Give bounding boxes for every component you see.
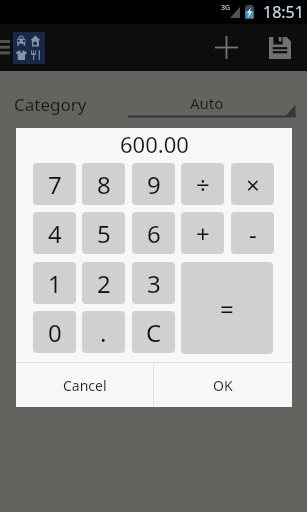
- staticText: 9: [147, 168, 161, 201]
- staticText: .: [100, 316, 107, 349]
- staticText: 7: [48, 168, 62, 201]
- button[interactable]: 1: [33, 262, 76, 304]
- button[interactable]: 4: [33, 212, 76, 254]
- staticText: 1: [48, 267, 62, 300]
- button[interactable]: Save: [258, 24, 302, 71]
- button[interactable]: +: [181, 212, 224, 254]
- button[interactable]: 8: [82, 163, 125, 205]
- staticText: 2: [97, 267, 111, 300]
- staticText: =: [220, 292, 234, 325]
- staticText: 8: [97, 168, 111, 201]
- staticText: +: [196, 217, 210, 250]
- button[interactable]: 2: [82, 262, 125, 304]
- button[interactable]: 6: [132, 212, 175, 254]
- staticText: -: [249, 217, 257, 250]
- staticText: ÷: [196, 168, 210, 201]
- staticText: Auto: [190, 93, 224, 113]
- button[interactable]: OK: [154, 363, 292, 407]
- staticText: 3: [147, 267, 161, 300]
- staticText: 4: [48, 217, 62, 250]
- staticText: ×: [246, 168, 260, 201]
- button[interactable]: ÷: [181, 163, 224, 205]
- button[interactable]: 0: [33, 311, 76, 353]
- button[interactable]: Add: [203, 24, 249, 71]
- button[interactable]: C: [132, 311, 175, 353]
- staticText: Category: [14, 93, 87, 116]
- staticText: 3G: [221, 3, 231, 13]
- button[interactable]: .: [82, 311, 125, 353]
- button[interactable]: 7: [33, 163, 76, 205]
- staticText: OK: [213, 376, 233, 395]
- staticText: Cancel: [63, 376, 107, 395]
- button[interactable]: =: [181, 262, 273, 354]
- button[interactable]: -: [231, 212, 274, 254]
- staticText: C: [146, 316, 162, 349]
- button[interactable]: Cancel: [16, 363, 153, 407]
- button[interactable]: 3: [132, 262, 175, 304]
- staticText: 5: [97, 217, 111, 250]
- staticText: 6: [147, 217, 161, 250]
- button[interactable]: 5: [82, 212, 125, 254]
- button[interactable]: Open navigation drawer: [0, 24, 45, 71]
- button[interactable]: ×: [231, 163, 274, 205]
- staticText: 600.00: [120, 129, 189, 159]
- staticText: 0: [48, 316, 62, 349]
- staticText: 18:51: [263, 1, 304, 23]
- button[interactable]: Auto: [128, 71, 296, 123]
- button[interactable]: 9: [132, 163, 175, 205]
